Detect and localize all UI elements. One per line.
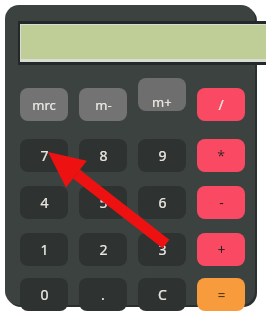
- button[interactable]: =: [197, 278, 245, 311]
- staticText: 5: [99, 193, 108, 212]
- button[interactable]: 5: [79, 186, 127, 219]
- staticText: m+: [152, 93, 172, 111]
- staticText: /: [218, 95, 224, 114]
- button[interactable]: 4: [20, 186, 68, 219]
- staticText: mrc: [32, 96, 56, 114]
- staticText: =: [217, 285, 226, 304]
- button[interactable]: 6: [138, 186, 186, 219]
- button[interactable]: 2: [79, 233, 127, 266]
- button[interactable]: 3: [138, 233, 186, 266]
- staticText: 2: [99, 240, 108, 259]
- staticText: m-: [95, 96, 112, 114]
- button[interactable]: .: [79, 278, 127, 311]
- button[interactable]: C: [138, 278, 186, 311]
- staticText: .: [101, 285, 105, 304]
- staticText: 1: [40, 240, 49, 259]
- staticText: 7: [40, 146, 49, 165]
- button[interactable]: m-: [79, 88, 127, 121]
- button[interactable]: m+: [138, 78, 186, 111]
- staticText: 3: [158, 240, 167, 259]
- button[interactable]: 1: [20, 233, 68, 266]
- button[interactable]: *: [197, 139, 245, 172]
- button[interactable]: +: [197, 233, 245, 266]
- button[interactable]: mrc: [20, 88, 68, 121]
- staticText: 6: [158, 193, 167, 212]
- staticText: *: [217, 146, 225, 165]
- staticText: C: [158, 285, 167, 304]
- staticText: 4: [40, 193, 49, 212]
- staticText: 0: [40, 285, 49, 304]
- button[interactable]: 9: [138, 139, 186, 172]
- staticText: 8: [99, 146, 108, 165]
- staticText: +: [217, 240, 226, 259]
- button[interactable]: 8: [79, 139, 127, 172]
- button[interactable]: 7: [20, 139, 68, 172]
- button[interactable]: 0: [20, 278, 68, 311]
- button[interactable]: -: [197, 186, 245, 219]
- staticText: 9: [158, 146, 167, 165]
- button[interactable]: /: [197, 88, 245, 121]
- staticText: -: [219, 193, 224, 212]
